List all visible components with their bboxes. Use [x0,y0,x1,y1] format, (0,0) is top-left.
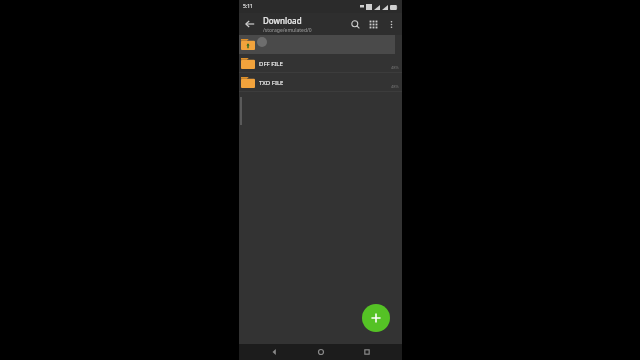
button[interactable]: Add [362,304,390,332]
button[interactable]: Change view [364,15,382,33]
staticText: 5:11 [243,3,253,10]
button[interactable]: Search [346,15,364,33]
button[interactable]: Recent apps [355,344,379,360]
staticText: 48% [391,84,399,89]
button[interactable]: More options [382,15,400,33]
staticText: Download [263,15,302,26]
button[interactable]: DFF FILE [239,54,402,73]
staticText: TXD FILE [259,79,391,87]
button[interactable]: Download [263,15,346,34]
button[interactable]: Back [262,344,286,360]
staticText: DFF FILE [259,60,391,68]
staticText: /storage/emulated/0 [263,27,312,34]
button[interactable]: Back [239,13,261,35]
staticText: 48% [391,65,399,70]
button[interactable]: TXD FILE [239,73,402,92]
button[interactable] [239,35,402,54]
button[interactable]: Home [309,344,333,360]
